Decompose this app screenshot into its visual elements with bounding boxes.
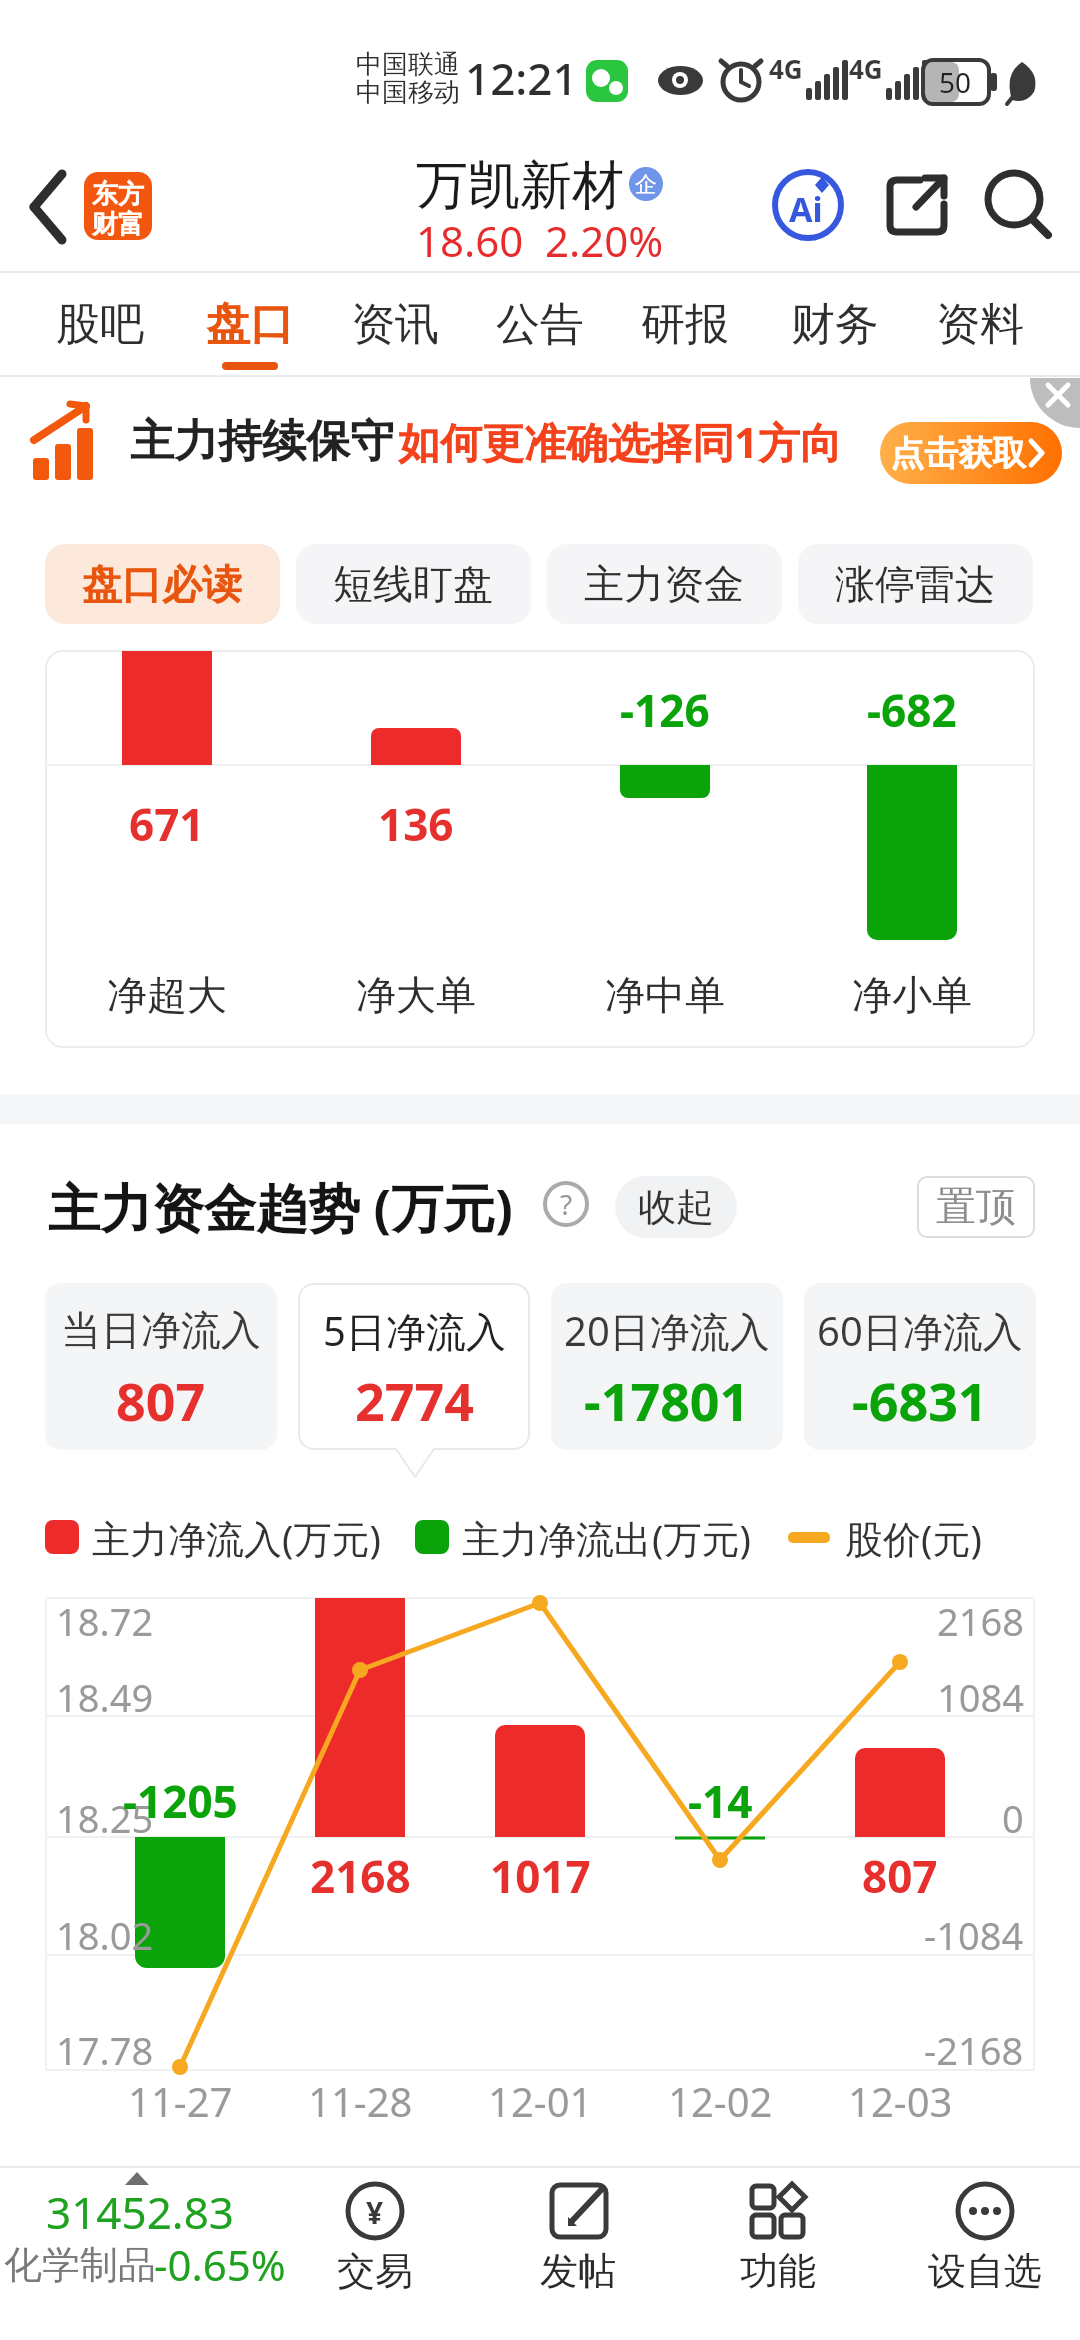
staticText: 设自选 [928,2247,1042,2295]
staticText: 中国移动 [356,76,460,109]
button[interactable] [45,1283,277,1450]
staticText: 主力资金趋势 (万元) [48,1171,513,1242]
staticText: 涨停雷达 [835,559,995,609]
button[interactable] [480,2168,670,2340]
staticText: 置顶 [936,1181,1016,1231]
button[interactable] [925,285,1035,365]
staticText: -1084 [924,1909,1024,1961]
staticText: 短线盯盘 [333,559,493,609]
staticText: 4G [769,51,803,86]
staticText: 交易 [337,2247,413,2295]
button[interactable] [0,2168,290,2340]
staticText: 净小单 [852,970,972,1020]
staticText: 股价(元) [845,1512,982,1564]
staticText: 12:21 [465,48,578,108]
staticText: 2168 [937,1595,1024,1647]
staticText: 1017 [490,1846,591,1906]
staticText: 主力净流出(万元) [462,1512,751,1564]
staticText: 净超大 [107,970,227,1020]
staticText: 财富 [92,208,144,241]
staticText: -6831 [852,1365,988,1436]
staticText: 1084 [937,1671,1024,1723]
staticText: ? [560,1185,573,1223]
staticText: -14 [688,1771,753,1831]
staticText: 20日净流入 [564,1303,770,1358]
button[interactable] [84,172,152,240]
staticText: 31452.83 [46,2182,234,2242]
staticText: 中国联通 [356,48,460,81]
button[interactable] [780,285,890,365]
staticText: 收起 [638,1183,714,1231]
button[interactable] [615,1176,737,1238]
staticText: Ai [789,186,823,232]
button[interactable] [770,165,850,245]
staticText: 18.02 [56,1909,154,1961]
button[interactable] [880,422,1062,484]
button[interactable] [298,1283,530,1450]
staticText: 公告 [496,297,584,352]
button[interactable] [45,544,280,624]
button[interactable] [880,170,955,242]
staticText: 主力持续保守 [130,414,394,469]
button[interactable] [670,2168,870,2340]
button[interactable] [980,168,1060,244]
button[interactable] [195,285,305,365]
button[interactable] [630,285,740,365]
staticText: 5日净流入 [323,1303,506,1358]
button[interactable] [551,1283,783,1450]
staticText: -17801 [584,1365,750,1436]
staticText: 18.60 [416,212,524,269]
staticText: 4G [849,51,883,86]
staticText: 资讯 [351,297,439,352]
button[interactable] [290,2168,480,2340]
staticText: 136 [378,794,454,854]
staticText: 18.72 [56,1595,154,1647]
staticText: -1205 [123,1771,238,1831]
staticText: 研报 [641,297,729,352]
staticText: 东方 [92,178,144,211]
staticText: 60日净流入 [817,1303,1023,1358]
staticText: 财务 [791,297,879,352]
staticText: 功能 [740,2247,816,2295]
staticText: 2774 [355,1365,474,1436]
staticText: 17.78 [56,2024,154,2076]
staticText: 0 [1002,1792,1024,1844]
staticText: 企 [635,171,657,199]
staticText: 807 [862,1846,938,1906]
button[interactable] [804,1283,1036,1450]
button[interactable] [547,544,782,624]
staticText: -0.65% [154,2236,286,2293]
staticText: 盘口 [206,297,294,352]
staticText: 股吧 [56,297,144,352]
staticText: 2.20% [545,212,664,269]
button[interactable] [340,285,450,365]
staticText: ¥ [366,2192,384,2233]
staticText: 11-27 [128,2074,233,2128]
button[interactable] [45,285,155,365]
button[interactable] [1022,368,1080,426]
staticText: 净大单 [356,970,476,1020]
staticText: 净中单 [605,970,725,1020]
button[interactable] [485,285,595,365]
button[interactable] [917,1176,1035,1238]
staticText: 化学制品 [4,2241,156,2289]
staticText: 2168 [310,1846,411,1906]
staticText: 18.25 [56,1792,154,1844]
staticText: -682 [867,680,957,740]
button[interactable] [10,160,80,260]
button[interactable] [798,544,1033,624]
staticText: 点击获取 [890,432,1026,475]
staticText: 12-02 [668,2074,773,2128]
button[interactable] [0,378,1080,506]
staticText: 12-01 [488,2074,593,2128]
button[interactable] [870,2168,1080,2340]
staticText: 18.49 [56,1671,154,1723]
staticText: 12-03 [848,2074,953,2128]
staticText: 主力资金 [584,559,744,609]
staticText: 发帖 [540,2247,616,2295]
button[interactable] [296,544,531,624]
staticText: 主力净流入(万元) [92,1512,381,1564]
staticText: 671 [129,794,205,854]
staticText: 资料 [936,297,1024,352]
staticText: 50 [939,63,972,101]
